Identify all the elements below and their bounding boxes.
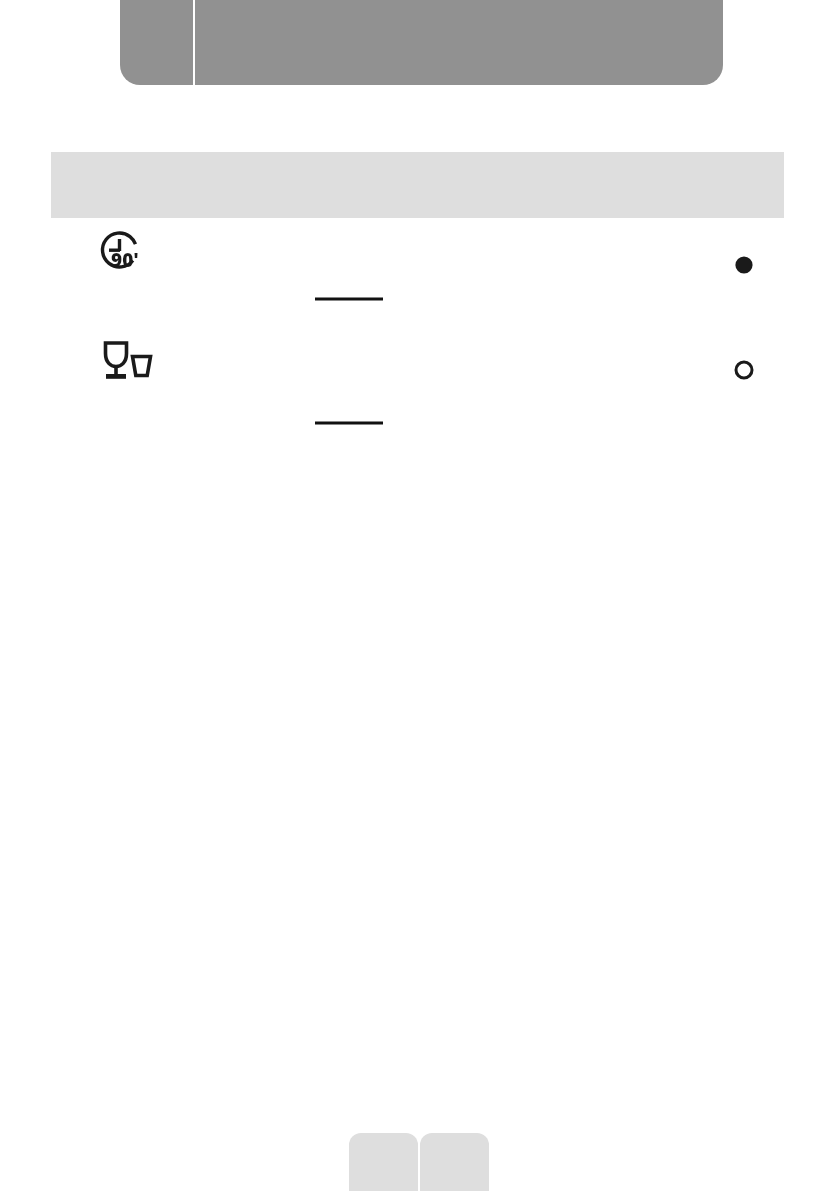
button[interactable]: 90' (51, 226, 784, 318)
staticText: 90' (111, 247, 139, 273)
button[interactable]: 90 minute programme, selected (731, 252, 757, 278)
button[interactable]: Glassware programme, not selected (51, 332, 784, 432)
button[interactable]: Previous (349, 1133, 418, 1191)
button[interactable]: Programme selector (120, 0, 723, 85)
button[interactable]: Glassware programme, not selected (731, 357, 757, 383)
button[interactable]: Next (420, 1133, 489, 1191)
